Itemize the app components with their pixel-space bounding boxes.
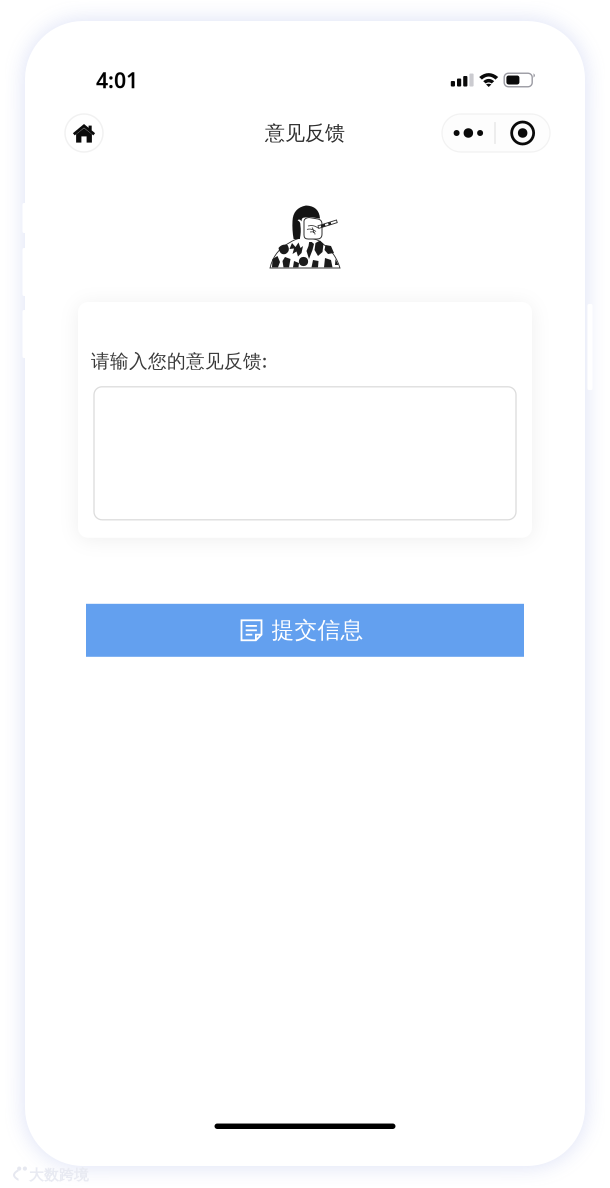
button[interactable]: Home [65,114,103,152]
staticText: 意见反馈 [265,121,345,145]
staticText: 提交信息 [271,616,363,644]
button[interactable]: Close [496,114,550,152]
button[interactable]: More [442,114,494,152]
staticText: 请输入您的意见反馈: [91,348,267,373]
staticText: 4:01 [96,66,138,94]
button[interactable]: 提交信息 [86,604,524,657]
staticText: 大数跨境 [29,1166,89,1184]
